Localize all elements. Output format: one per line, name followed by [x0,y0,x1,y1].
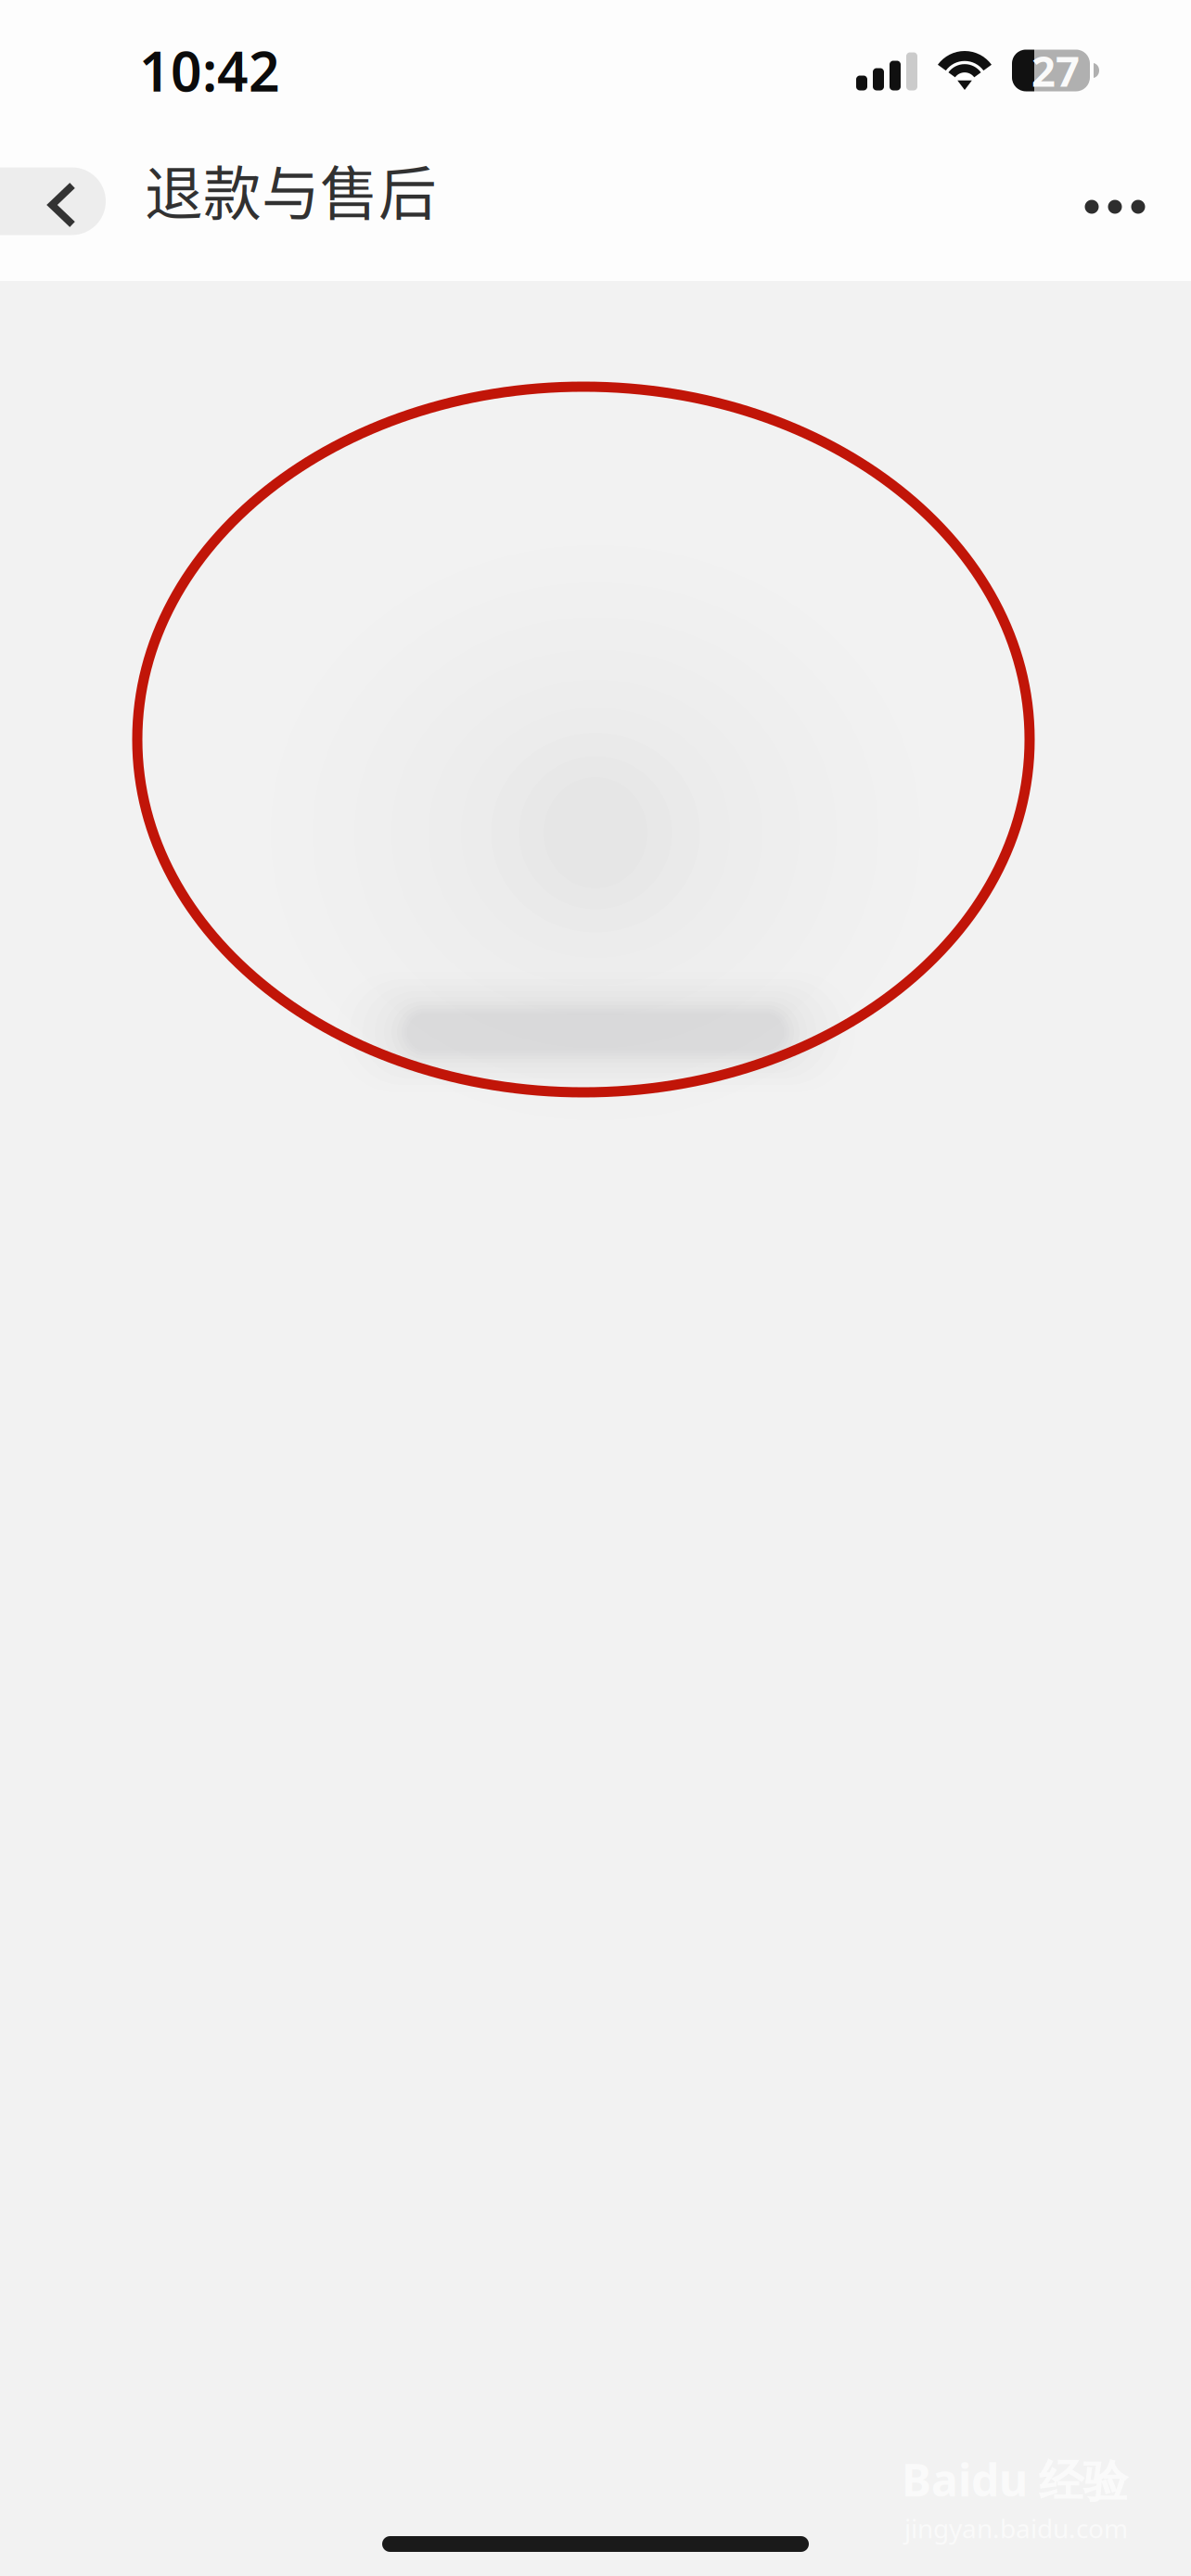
staticText: 退款与售后 [145,147,437,231]
staticText: 27 [1031,43,1080,98]
staticText: Baidu 经验 [902,2450,1128,2509]
staticText: 10:42 [139,34,280,107]
button[interactable]: More [1050,149,1191,253]
button[interactable]: Back [0,167,106,235]
